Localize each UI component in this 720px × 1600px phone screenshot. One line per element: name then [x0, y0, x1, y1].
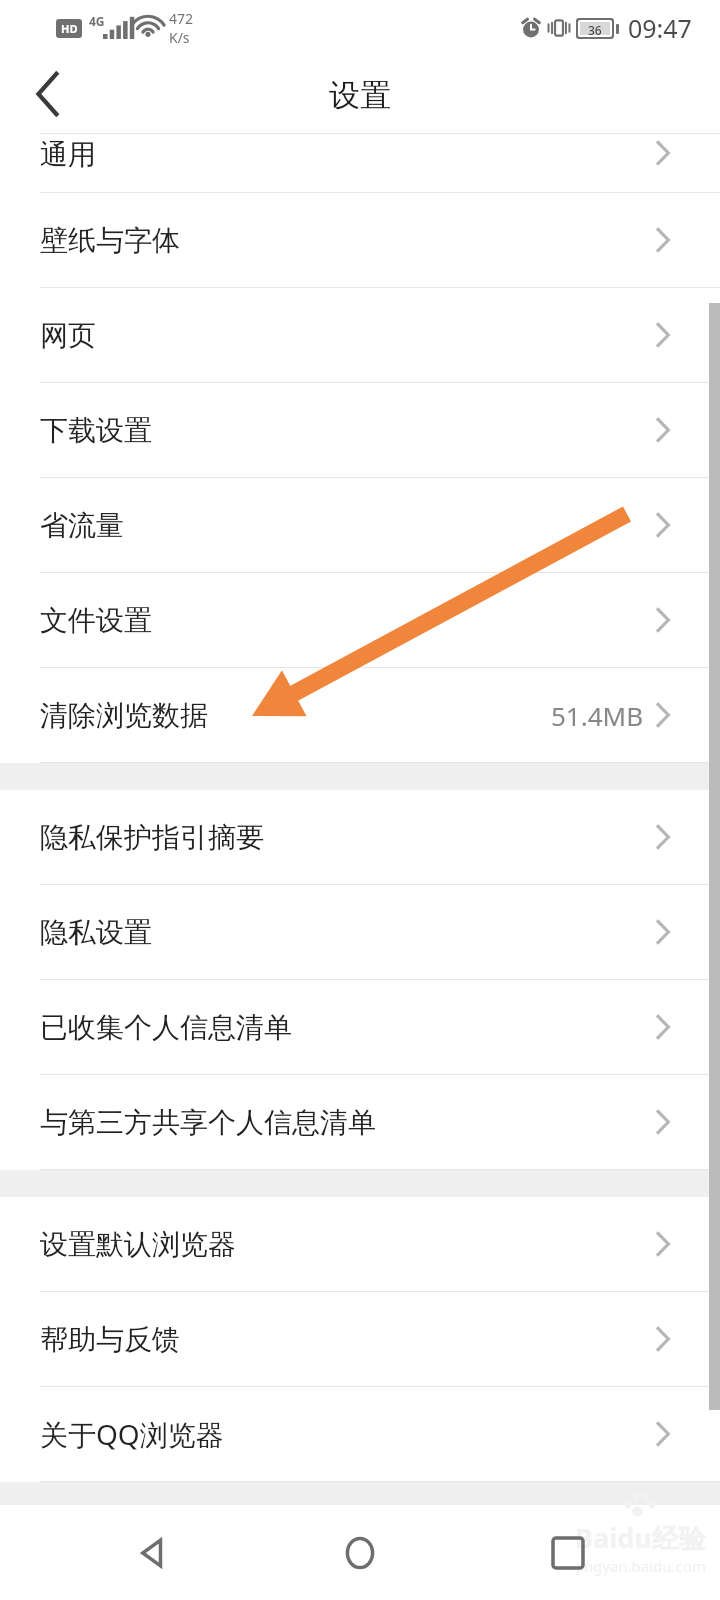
staticText: 下载设置 — [40, 413, 152, 448]
staticText: 09:47 — [628, 11, 692, 45]
button[interactable]: 通用 — [0, 134, 720, 192]
staticText: 与第三方共享个人信息清单 — [40, 1105, 376, 1140]
button[interactable]: 壁纸与字体 — [0, 193, 720, 287]
staticText: 网页 — [40, 318, 96, 353]
staticText: 文件设置 — [40, 603, 152, 638]
staticText: 设置默认浏览器 — [40, 1227, 236, 1262]
staticText: 隐私设置 — [40, 915, 152, 950]
staticText: 36 — [588, 22, 602, 35]
staticText: 清除浏览数据 — [40, 698, 208, 733]
button[interactable]: 关于QQ浏览器 — [0, 1387, 720, 1481]
staticText: 4G — [89, 13, 105, 29]
staticText: 隐私保护指引摘要 — [40, 820, 264, 855]
staticText: 通用 — [40, 137, 96, 172]
button[interactable]: 设置默认浏览器 — [0, 1197, 720, 1291]
button[interactable]: 已收集个人信息清单 — [0, 980, 720, 1074]
button[interactable]: 清除浏览数据 — [0, 668, 720, 762]
button[interactable]: 省流量 — [0, 478, 720, 572]
staticText: 设置 — [329, 76, 391, 115]
button[interactable]: 帮助与反馈 — [0, 1292, 720, 1386]
staticText: 帮助与反馈 — [40, 1322, 180, 1357]
button[interactable]: 下载设置 — [0, 383, 720, 477]
staticText: jingyan.baidu.com — [576, 1556, 706, 1576]
button[interactable]: 文件设置 — [0, 573, 720, 667]
button[interactable]: Recent apps — [513, 1505, 623, 1600]
button[interactable]: 网页 — [0, 288, 720, 382]
button[interactable]: Back — [98, 1505, 208, 1600]
staticText: 51.4MB — [551, 698, 644, 733]
staticText: Baidu经验 — [575, 1519, 706, 1556]
staticText: 472 — [169, 9, 194, 28]
staticText: 省流量 — [40, 508, 124, 543]
staticText: 关于QQ浏览器 — [40, 1415, 224, 1453]
staticText: 已收集个人信息清单 — [40, 1010, 292, 1045]
button[interactable]: 隐私保护指引摘要 — [0, 790, 720, 884]
staticText: HD — [61, 21, 78, 36]
button[interactable]: Home — [305, 1505, 415, 1600]
button[interactable]: 隐私设置 — [0, 885, 720, 979]
button[interactable]: Back — [0, 55, 96, 133]
staticText: 壁纸与字体 — [40, 223, 180, 258]
staticText: K/s — [169, 28, 190, 47]
button[interactable]: 与第三方共享个人信息清单 — [0, 1075, 720, 1169]
